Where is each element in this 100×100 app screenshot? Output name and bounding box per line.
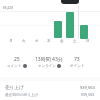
staticText: 金 [60, 39, 64, 44]
other: 詳細 [23, 64, 27, 68]
staticText: ¥39,563 [80, 85, 95, 90]
staticText: 火 [22, 39, 26, 44]
staticText: ¥39,563 [81, 92, 95, 97]
staticText: 25 [14, 56, 20, 63]
staticText: コメント [7, 64, 22, 68]
staticText: オンライン [38, 64, 56, 68]
staticText: ポイント [70, 64, 85, 68]
button[interactable]: 13時間 43分 [24, 56, 74, 68]
staticText: 日 [86, 39, 90, 44]
button[interactable]: 売り上げ [5, 85, 95, 97]
button[interactable]: 73 [52, 56, 100, 68]
staticText: 土 [73, 39, 77, 44]
staticText: 73 [74, 56, 80, 63]
staticText: 過去30日の売り上げ [5, 92, 39, 97]
staticText: ¥6,420 [3, 6, 13, 10]
other: 詳細 [57, 64, 61, 68]
staticText: 木 [47, 39, 51, 44]
staticText: 水 [35, 39, 39, 44]
button[interactable]: 25 [0, 56, 42, 68]
staticText: 売り上げ [5, 85, 24, 91]
staticText: 月 [9, 39, 13, 44]
staticText: 13時間 43分 [35, 56, 63, 63]
